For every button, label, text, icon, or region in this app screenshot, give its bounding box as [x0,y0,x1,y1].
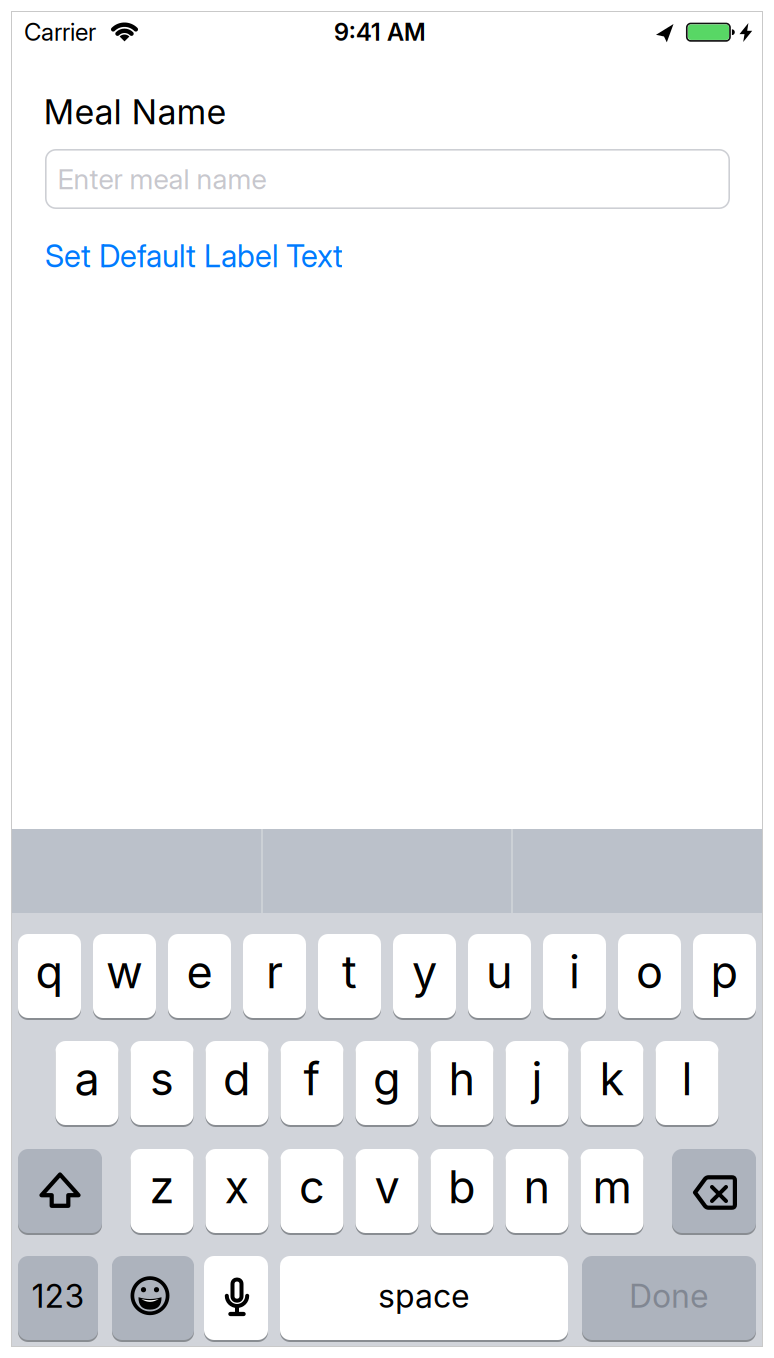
staticText: g [373,1052,401,1106]
staticText: Set Default Label Text [45,238,343,274]
staticText: space [378,1277,470,1315]
button[interactable]: x [205,1149,268,1233]
staticText: m [592,1160,631,1214]
button[interactable]: y [393,934,456,1018]
button[interactable]: s [130,1041,193,1125]
staticText: v [374,1160,399,1214]
button[interactable]: q [18,934,81,1018]
button[interactable]: l [655,1041,718,1125]
staticText: j [531,1052,542,1106]
button[interactable]: a [55,1041,118,1125]
staticText: i [569,945,580,999]
button[interactable]: u [468,934,531,1018]
button[interactable]: Emoji [112,1256,194,1340]
staticText: l [681,1052,692,1106]
button[interactable]: m [580,1149,643,1233]
button[interactable]: f [280,1041,343,1125]
button[interactable]: h [430,1041,493,1125]
button[interactable]: Set Default Label Text [45,238,343,274]
button[interactable]: o [618,934,681,1018]
staticText: w [106,945,143,999]
staticText: y [412,945,437,999]
staticText: Carrier [24,18,96,46]
staticText: t [342,945,357,999]
button[interactable]: k [580,1041,643,1125]
button[interactable]: e [168,934,231,1018]
staticText: s [150,1052,174,1106]
staticText: d [223,1052,251,1106]
staticText: h [448,1052,475,1106]
button[interactable]: n [505,1149,568,1233]
staticText: x [224,1160,249,1214]
staticText: r [266,945,283,999]
button[interactable]: Delete [672,1149,756,1233]
staticText: n [523,1160,550,1214]
button[interactable]: g [355,1041,418,1125]
button[interactable]: v [355,1149,418,1233]
staticText: u [486,945,513,999]
button[interactable]: 123 [18,1256,98,1340]
button[interactable]: space [280,1256,568,1340]
staticText: q [35,945,63,999]
staticText: Done [629,1277,709,1315]
button[interactable]: r [243,934,306,1018]
button[interactable]: Enter meal name [45,149,730,209]
button[interactable]: w [93,934,156,1018]
button[interactable]: b [430,1149,493,1233]
button[interactable]: p [693,934,756,1018]
button[interactable]: j [505,1041,568,1125]
staticText: z [149,1160,174,1214]
button[interactable]: z [130,1149,193,1233]
button[interactable]: i [543,934,606,1018]
staticText: k [599,1052,624,1106]
staticText: f [303,1052,320,1106]
button[interactable]: Done [582,1256,756,1340]
staticText: 123 [31,1277,84,1315]
button[interactable]: Shift [18,1149,102,1233]
staticText: b [448,1160,476,1214]
staticText: a [74,1052,99,1106]
staticText: c [299,1160,325,1214]
staticText: o [636,945,663,999]
button[interactable]: c [280,1149,343,1233]
button[interactable]: d [205,1041,268,1125]
staticText: Meal Name [43,92,226,132]
staticText: 9:41 AM [334,18,426,46]
staticText: Enter meal name [57,162,266,195]
staticText: p [710,945,738,999]
button[interactable]: t [318,934,381,1018]
button[interactable]: Dictation [204,1256,268,1340]
staticText: e [186,945,212,999]
